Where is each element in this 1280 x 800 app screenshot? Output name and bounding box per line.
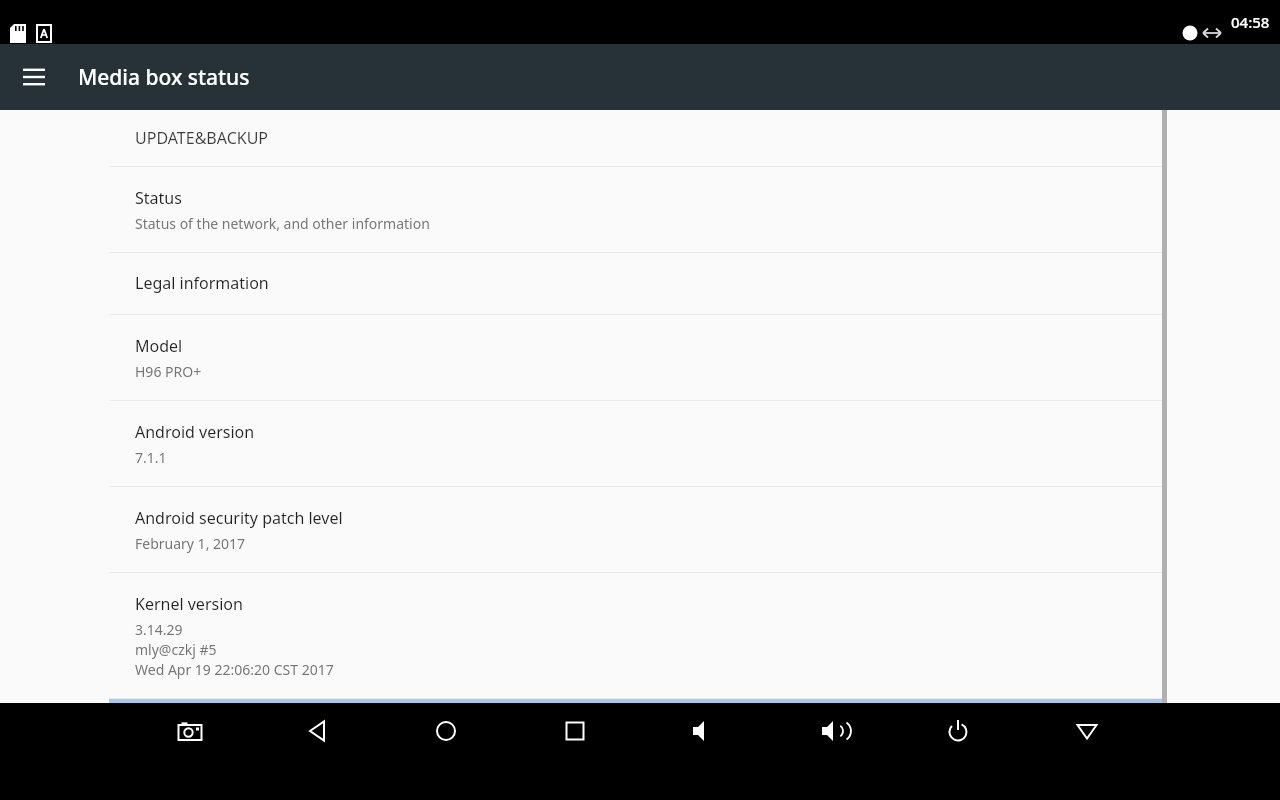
staticText: Android version (135, 421, 255, 443)
staticText: February 1, 2017 (135, 534, 246, 553)
button[interactable]: Open navigation menu (12, 55, 56, 99)
staticText: UPDATE&BACKUP (135, 127, 269, 149)
staticText: Kernel version (135, 593, 243, 615)
staticText: Android security patch level (135, 507, 343, 529)
staticText: H96 PRO+ (135, 362, 202, 381)
staticText: Media box status (78, 63, 250, 92)
button[interactable]: Home (414, 703, 478, 759)
button[interactable]: Kernel version (0, 573, 1280, 698)
button[interactable]: Power (926, 703, 990, 759)
button[interactable]: Volume up (799, 703, 863, 759)
staticText: 04:58 (1231, 12, 1270, 32)
staticText: mly@czkj #5 (135, 640, 217, 659)
button[interactable]: Volume down (670, 703, 734, 759)
staticText: 3.14.29 (135, 620, 183, 639)
button[interactable]: Status (0, 167, 1280, 252)
button[interactable]: Hide navigation bar (1055, 703, 1119, 759)
button[interactable]: UPDATE&BACKUP (0, 110, 1280, 166)
staticText: Status of the network, and other informa… (135, 214, 430, 233)
button[interactable]: Screenshot (158, 703, 222, 759)
staticText: 7.1.1 (135, 448, 167, 467)
button[interactable]: Android version (0, 401, 1280, 486)
button[interactable]: Legal information (0, 253, 1280, 314)
button[interactable]: Recent apps (543, 703, 607, 759)
staticText: Model (135, 335, 183, 357)
button[interactable]: Model (0, 315, 1280, 400)
staticText: Status (135, 187, 182, 209)
button[interactable]: Back (286, 703, 350, 759)
button[interactable]: Android security patch level (0, 487, 1280, 572)
staticText: Legal information (135, 272, 269, 294)
staticText: Wed Apr 19 22:06:20 CST 2017 (135, 660, 334, 679)
